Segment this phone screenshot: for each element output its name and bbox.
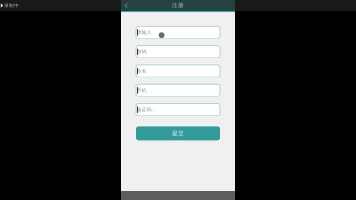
staticText: 录制中 [4,3,19,8]
button[interactable]: 手机 [136,84,220,96]
button[interactable]: 密码 [136,46,220,58]
staticText: 姓名 [136,68,146,74]
staticText: 验证码： [136,106,156,113]
staticText: 提交 [172,130,184,137]
staticText: 手机 [136,87,146,93]
staticText: 密码 [136,49,146,55]
button[interactable]: 验证码： [136,103,220,116]
button[interactable]: Back [121,0,133,11]
button[interactable]: 提交 [136,126,220,140]
button[interactable]: 姓名 [136,65,220,77]
staticText: 注册 [172,2,184,9]
button[interactable]: 请输入 [136,26,220,39]
staticText: 请输入 [136,29,151,35]
